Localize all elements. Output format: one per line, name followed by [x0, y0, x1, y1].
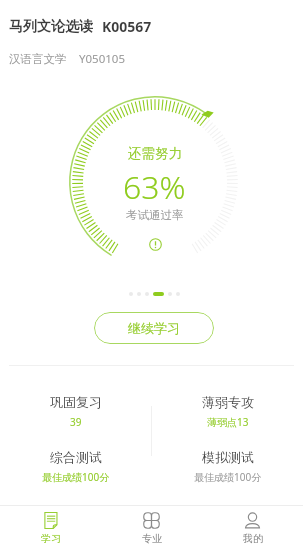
staticText: 我的 — [243, 532, 263, 545]
button[interactable]: 巩固复习 — [0, 387, 151, 443]
button[interactable]: 薄弱专攻 — [152, 387, 303, 443]
button[interactable]: 综合测试 — [0, 442, 151, 498]
staticText: K00567 — [102, 17, 152, 36]
staticText: 63% — [123, 165, 186, 209]
staticText: Y050105 — [79, 51, 125, 67]
button[interactable]: 学习 — [0, 507, 101, 550]
staticText: 马列文论选读 — [9, 18, 93, 36]
staticText: 薄弱专攻 — [202, 394, 254, 410]
staticText: 39 — [70, 415, 82, 429]
button[interactable]: 我的 — [202, 507, 303, 550]
staticText: 模拟测试 — [202, 449, 254, 465]
staticText: 最佳成绩100分 — [194, 470, 262, 484]
staticText: 专业 — [142, 532, 162, 545]
staticText: 巩固复习 — [50, 394, 102, 410]
staticText: 学习 — [41, 532, 61, 545]
staticText: 继续学习 — [128, 320, 180, 336]
staticText: 还需努力 — [128, 145, 182, 162]
button[interactable]: 模拟测试 — [152, 442, 303, 498]
staticText: 薄弱点13 — [207, 415, 249, 429]
staticText: 最佳成绩100分 — [42, 470, 110, 484]
button[interactable]: 专业 — [101, 507, 202, 550]
staticText: 考试通过率 — [126, 208, 184, 222]
staticText: 综合测试 — [50, 449, 102, 465]
staticText: 汉语言文学 — [9, 52, 67, 66]
button[interactable]: 继续学习 — [94, 312, 214, 344]
button[interactable]: Information — [149, 238, 162, 251]
